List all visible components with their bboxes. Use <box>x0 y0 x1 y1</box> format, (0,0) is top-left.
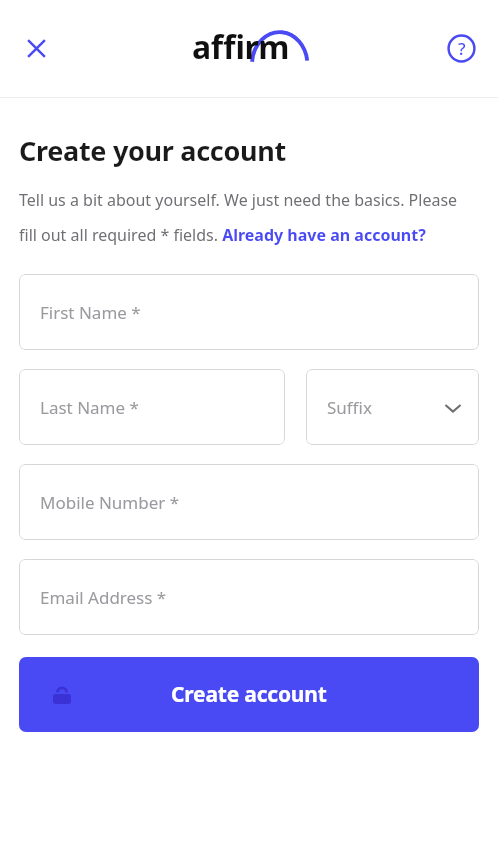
button[interactable]: Close <box>14 26 58 70</box>
button[interactable]: Mobile Number * <box>19 464 479 540</box>
staticText: Email Address * <box>40 586 167 609</box>
staticText: Create your account <box>19 132 286 169</box>
staticText: First Name * <box>40 301 141 324</box>
staticText: Last Name * <box>40 396 139 419</box>
button[interactable]: Create account <box>19 657 479 732</box>
staticText: Create account <box>171 680 327 709</box>
staticText: Suffix <box>327 396 372 419</box>
staticText: Tell us a bit about yourself. We just ne… <box>19 189 479 246</box>
staticText: Mobile Number * <box>40 491 180 514</box>
staticText: ? <box>458 37 466 60</box>
button[interactable]: Last Name * <box>19 369 285 445</box>
button[interactable]: First Name * <box>19 274 479 350</box>
button[interactable]: Email Address * <box>19 559 479 635</box>
button[interactable]: Suffix <box>306 369 479 445</box>
button[interactable]: Help <box>439 26 483 70</box>
staticText: affirm <box>192 25 289 69</box>
